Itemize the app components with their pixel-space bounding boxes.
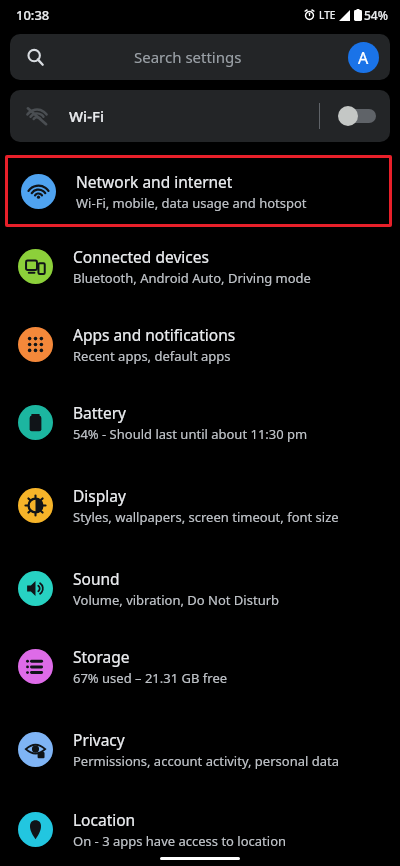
button[interactable]: Location [0,793,400,866]
button[interactable]: Connected devices [0,227,400,305]
staticText: On - 3 apps have access to location [73,832,287,850]
staticText: 67% used – 21.31 GB free [73,669,228,687]
staticText: Wi-Fi, mobile, data usage and hotspot [76,194,307,212]
button[interactable]: Sound [0,549,400,627]
staticText: Apps and notifications [73,324,236,345]
staticText: Bluetooth, Android Auto, Driving mode [73,269,311,287]
staticText: A [358,47,369,69]
button[interactable]: Wi-Fi [10,90,390,142]
staticText: Sound [73,568,120,589]
staticText: Location [73,809,136,830]
button[interactable]: Display [0,461,400,549]
staticText: Network and internet [76,171,233,192]
button[interactable]: Wi-Fi toggle [338,100,380,132]
button[interactable]: Privacy [0,705,400,793]
staticText: 54% - Should last until about 11:30 pm [73,425,308,443]
button[interactable]: Battery [0,383,400,461]
staticText: Wi-Fi [69,106,104,126]
staticText: Privacy [73,729,125,750]
staticText: Display [73,485,126,506]
staticText: 54% [364,7,388,23]
button[interactable]: Search settings [10,34,390,80]
staticText: Battery [73,402,127,423]
staticText: Search settings [134,47,242,67]
staticText: Styles, wallpapers, screen timeout, font… [73,508,339,526]
staticText: LTE [319,8,336,22]
staticText: Volume, vibration, Do Not Disturb [73,591,280,609]
staticText: Connected devices [73,246,209,267]
button[interactable]: Apps and notifications [0,305,400,383]
button[interactable]: Storage [0,627,400,705]
staticText: 10:38 [16,6,50,24]
staticText: Recent apps, default apps [73,347,231,365]
staticText: Storage [73,646,130,667]
staticText: Permissions, account activity, personal … [73,752,339,770]
